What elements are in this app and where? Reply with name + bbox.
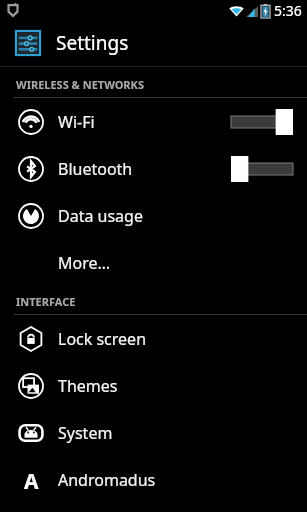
staticText: Lock screen <box>58 328 293 350</box>
staticText: Data usage <box>58 205 293 227</box>
staticText: More… <box>58 252 293 274</box>
staticText: Settings <box>56 30 129 56</box>
staticText: Themes <box>58 375 293 397</box>
button[interactable]: A <box>0 456 307 503</box>
staticText: INTERFACE <box>16 294 76 309</box>
button[interactable]: Bluetooth <box>0 145 307 192</box>
staticText: Bluetooth <box>58 158 231 180</box>
staticText: WIRELESS & NETWORKS <box>16 77 144 92</box>
button[interactable]: Wi-Fi <box>0 98 307 145</box>
staticText: 5:36 <box>274 1 302 20</box>
button[interactable]: Lock screen <box>0 315 307 362</box>
button[interactable]: System <box>0 409 307 456</box>
staticText: Andromadus <box>58 469 293 491</box>
button[interactable]: Off <box>231 156 293 182</box>
button[interactable]: More… <box>0 239 307 286</box>
staticText: System <box>58 422 293 444</box>
button[interactable]: On <box>231 109 293 135</box>
button[interactable]: Settings <box>0 20 307 66</box>
staticText: Wi-Fi <box>58 111 231 133</box>
button[interactable]: Data usage <box>0 192 307 239</box>
staticText: A <box>24 467 39 493</box>
button[interactable]: Themes <box>0 362 307 409</box>
